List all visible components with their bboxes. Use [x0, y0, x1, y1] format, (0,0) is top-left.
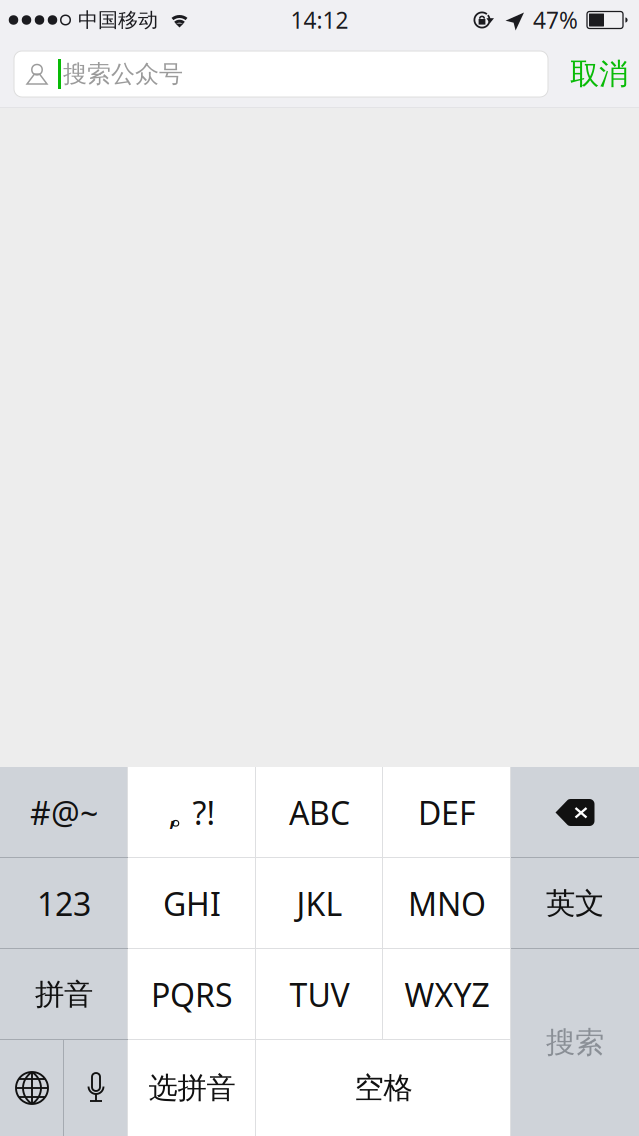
staticText: 中国移动: [78, 8, 158, 32]
staticText: 选拼音: [148, 1070, 235, 1106]
button[interactable]: ABC: [256, 767, 383, 858]
staticText: MNO: [408, 882, 486, 925]
button[interactable]: #@~: [0, 767, 128, 858]
button[interactable]: Switch keyboard: [0, 1040, 64, 1136]
staticText: GHI: [163, 882, 221, 925]
staticText: #@~: [30, 791, 98, 834]
button[interactable]: 英文: [511, 858, 639, 949]
button[interactable]: DEF: [383, 767, 511, 858]
staticText: WXYZ: [404, 973, 489, 1016]
button[interactable]: PQRS: [128, 949, 256, 1040]
button[interactable]: MNO: [383, 858, 511, 949]
button[interactable]: Delete: [511, 767, 639, 858]
button[interactable]: 123: [0, 858, 128, 949]
staticText: 拼音: [35, 976, 93, 1012]
staticText: ?!: [192, 791, 215, 834]
staticText: 47%: [533, 5, 578, 35]
button[interactable]: 搜索: [511, 949, 639, 1136]
staticText: 123: [37, 882, 91, 925]
staticText: 搜索公众号: [63, 59, 183, 89]
staticText: 。: [169, 793, 201, 832]
button[interactable]: 取消: [559, 48, 639, 100]
button[interactable]: 拼音: [0, 949, 128, 1040]
staticText: ,: [168, 791, 177, 834]
button[interactable]: Dictation: [64, 1040, 128, 1136]
staticText: DEF: [418, 791, 476, 834]
button[interactable]: WXYZ: [383, 949, 511, 1040]
button[interactable]: JKL: [256, 858, 383, 949]
button[interactable]: 空格: [256, 1040, 511, 1136]
staticText: 搜索: [546, 1024, 604, 1060]
staticText: ABC: [289, 791, 350, 834]
staticText: 取消: [570, 56, 628, 92]
button[interactable]: 选拼音: [128, 1040, 256, 1136]
staticText: 空格: [354, 1070, 412, 1106]
staticText: 英文: [546, 885, 604, 921]
staticText: JKL: [296, 882, 342, 925]
staticText: PQRS: [151, 973, 233, 1016]
staticText: TUV: [289, 973, 349, 1016]
button[interactable]: ,: [128, 767, 256, 858]
button[interactable]: TUV: [256, 949, 383, 1040]
staticText: 14:12: [290, 5, 348, 35]
button[interactable]: GHI: [128, 858, 256, 949]
